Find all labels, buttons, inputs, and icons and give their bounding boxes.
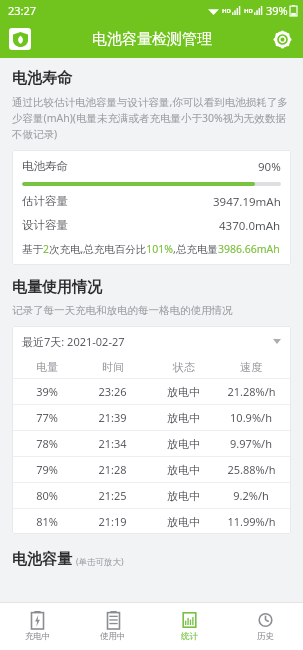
staticText: 23:26: [98, 384, 127, 399]
button[interactable]: App icon: [9, 28, 31, 50]
staticText: 放电中: [167, 411, 200, 425]
staticText: 3947.19mAh: [213, 194, 281, 210]
staticText: 历史: [257, 631, 274, 642]
staticText: 9.2%/h: [233, 488, 269, 503]
button[interactable]: 78%: [12, 431, 291, 457]
staticText: 电池容量: [12, 550, 72, 569]
staticText: 9.97%/h: [230, 436, 272, 451]
button[interactable]: 统计: [151, 603, 227, 650]
staticText: 状态: [173, 360, 195, 374]
staticText: 最近7天: 2021-02-27: [22, 334, 125, 349]
staticText: 39%: [266, 3, 288, 18]
staticText: HD: [222, 7, 231, 15]
staticText: 统计: [181, 631, 198, 642]
staticText: 时间: [102, 360, 124, 374]
staticText: 21:19: [98, 514, 127, 529]
button[interactable]: 最近7天: 2021-02-27: [12, 326, 291, 356]
staticText: 81%: [36, 514, 58, 529]
button[interactable]: 39%: [12, 379, 291, 405]
button[interactable]: 历史: [227, 603, 303, 650]
staticText: (单击可放大): [76, 556, 124, 568]
staticText: 11.99%/h: [227, 514, 276, 529]
staticText: 80%: [36, 488, 58, 503]
staticText: 基于2次充电,总充电百分比101%,总充电量3986.66mAh: [22, 242, 280, 256]
staticText: 21:39: [98, 410, 127, 425]
button[interactable]: 79%: [12, 457, 291, 483]
staticText: 21:25: [98, 488, 127, 503]
staticText: 放电中: [167, 385, 200, 399]
staticText: 10.9%/h: [230, 410, 272, 425]
staticText: 电量使用情况: [12, 278, 102, 297]
staticText: 4370.0mAh: [219, 218, 281, 234]
staticText: 估计容量: [22, 194, 68, 208]
staticText: HD: [244, 7, 253, 15]
staticText: 放电中: [167, 463, 200, 477]
staticText: 25.88%/h: [227, 462, 276, 477]
staticText: 39%: [36, 384, 58, 399]
staticText: 放电中: [167, 515, 200, 529]
staticText: 79%: [36, 462, 58, 477]
staticText: 电池寿命: [12, 69, 72, 88]
button[interactable]: 使用中: [75, 603, 151, 650]
button[interactable]: 充电中: [0, 603, 75, 650]
button[interactable]: 81%: [12, 509, 291, 534]
button[interactable]: 电池寿命: [12, 150, 291, 265]
button[interactable]: 80%: [12, 483, 291, 509]
staticText: 77%: [36, 410, 58, 425]
button[interactable]: 77%: [12, 405, 291, 431]
staticText: 90%: [258, 159, 281, 175]
staticText: 记录了每一天充电和放电的每一格电的使用情况: [12, 304, 233, 317]
staticText: 充电中: [25, 631, 51, 642]
staticText: 21.28%/h: [227, 384, 276, 399]
staticText: 放电中: [167, 437, 200, 451]
staticText: 21:28: [98, 462, 127, 477]
staticText: 21:34: [98, 436, 127, 451]
staticText: 速度: [240, 360, 262, 374]
button[interactable]: Settings: [267, 24, 297, 54]
staticText: 78%: [36, 436, 58, 451]
staticText: 电池寿命: [22, 159, 68, 173]
staticText: 23:27: [8, 3, 37, 18]
staticText: 设计容量: [22, 218, 68, 232]
staticText: 通过比较估计电池容量与设计容量,你可以看到电池损耗了多少容量(mAh)(电量未充…: [12, 95, 291, 141]
staticText: 电量: [36, 360, 58, 374]
staticText: 电池容量检测管理: [92, 30, 212, 49]
staticText: 放电中: [167, 489, 200, 503]
staticText: 使用中: [100, 631, 126, 642]
